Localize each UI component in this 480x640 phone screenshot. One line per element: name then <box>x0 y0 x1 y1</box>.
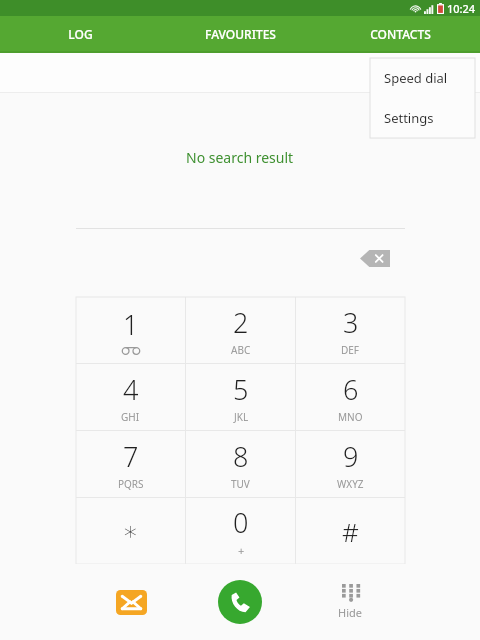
staticText: 0 <box>233 504 249 541</box>
button[interactable]: Call <box>218 580 262 624</box>
button[interactable]: 6 <box>296 364 405 430</box>
staticText: LOG <box>68 26 93 42</box>
button[interactable]: LOG <box>0 16 160 51</box>
button[interactable]: 1 <box>76 297 185 363</box>
staticText: 4 <box>123 371 139 408</box>
staticText: 6 <box>343 371 359 408</box>
staticText: ABC <box>231 343 251 357</box>
button[interactable]: Hide keypad <box>338 584 362 620</box>
button[interactable]: # <box>296 498 405 564</box>
button[interactable]: 8 <box>186 431 295 497</box>
button[interactable]: Backspace <box>355 243 395 273</box>
staticText: 1 <box>123 306 139 343</box>
button[interactable]: Settings <box>370 98 475 138</box>
staticText: 3 <box>343 304 359 341</box>
staticText: GHI <box>121 410 140 424</box>
button[interactable]: ∗ <box>76 498 185 564</box>
staticText: MNO <box>338 410 363 424</box>
button[interactable]: 0 <box>186 498 295 564</box>
staticText: 9 <box>343 438 359 475</box>
button[interactable]: 3 <box>296 297 405 363</box>
staticText: PQRS <box>118 477 144 491</box>
button[interactable]: Message <box>108 579 154 625</box>
button[interactable]: 5 <box>186 364 295 430</box>
staticText: # <box>342 514 359 549</box>
button[interactable]: FAVOURITES <box>160 16 320 51</box>
staticText: WXYZ <box>337 477 364 491</box>
staticText: DEF <box>341 343 360 357</box>
staticText: 2 <box>233 304 249 341</box>
staticText: FAVOURITES <box>205 26 276 42</box>
staticText: 10:24 <box>447 1 476 16</box>
staticText: Speed dial <box>384 69 448 87</box>
staticText: CONTACTS <box>370 26 431 42</box>
button[interactable]: 2 <box>186 297 295 363</box>
staticText: Hide <box>338 605 362 620</box>
staticText: 7 <box>123 438 139 475</box>
staticText: + <box>238 543 245 558</box>
staticText: 8 <box>233 438 249 475</box>
staticText: 5 <box>233 371 249 408</box>
staticText: Settings <box>384 109 434 127</box>
button[interactable]: 4 <box>76 364 185 430</box>
button[interactable]: 9 <box>296 431 405 497</box>
staticText: ∗ <box>122 516 139 546</box>
staticText: TUV <box>231 477 250 491</box>
button[interactable]: CONTACTS <box>320 16 480 51</box>
button[interactable]: 7 <box>76 431 185 497</box>
staticText: JKL <box>234 410 249 424</box>
staticText: No search result <box>186 148 294 167</box>
button[interactable]: Speed dial <box>370 58 475 98</box>
